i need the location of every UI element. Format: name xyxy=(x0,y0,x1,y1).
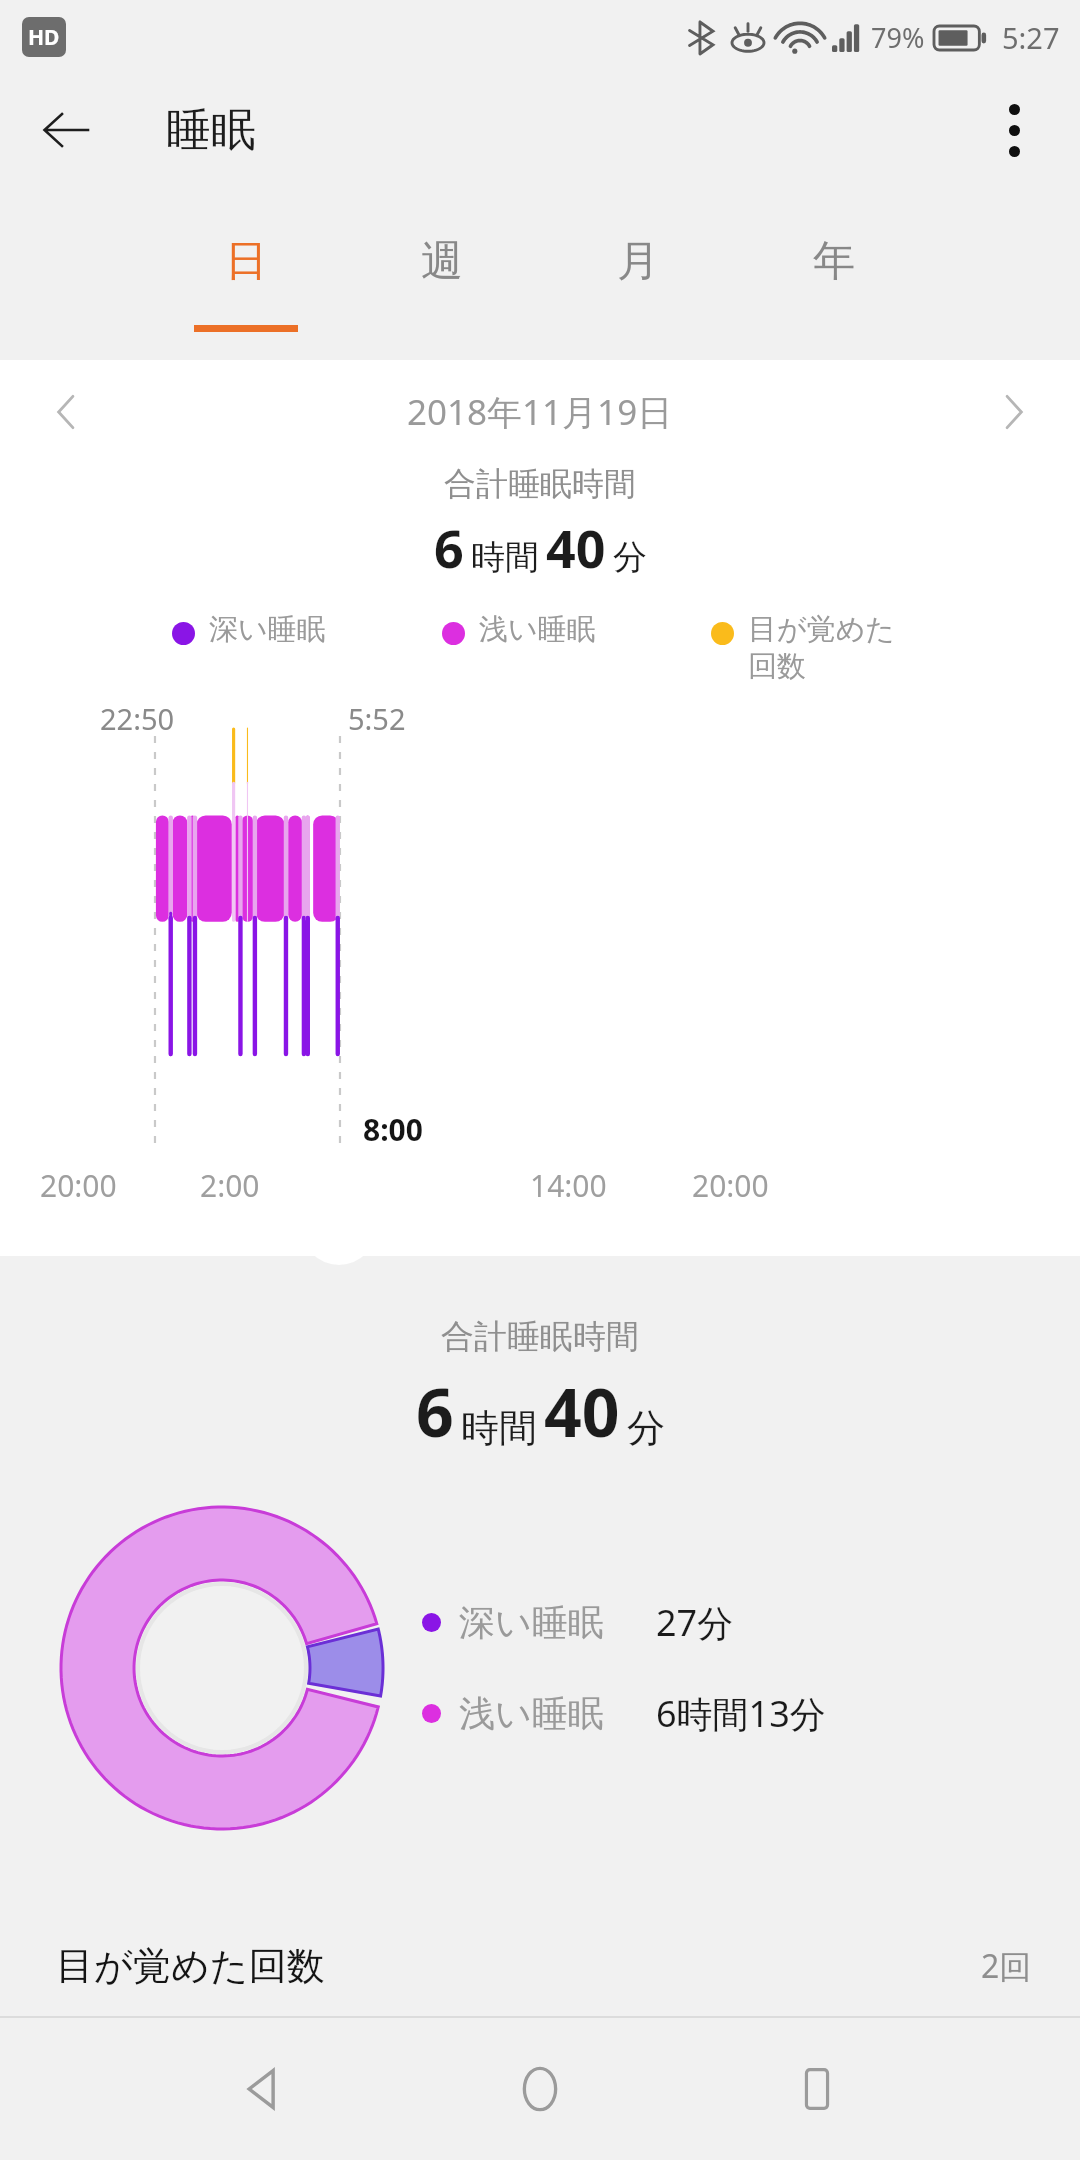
button[interactable]: More options xyxy=(974,90,1054,170)
staticText: 2018年11月19日 xyxy=(407,388,673,436)
staticText: 40 xyxy=(546,512,606,583)
staticText: 5:52 xyxy=(348,699,406,738)
staticText: 79% xyxy=(871,19,925,56)
staticText: HD xyxy=(28,23,60,52)
staticText: 8:00 xyxy=(363,1109,423,1150)
button[interactable]: 週 xyxy=(344,186,540,360)
staticText: 40 xyxy=(544,1366,620,1456)
button[interactable]: Back xyxy=(208,2034,318,2144)
staticText: 2回 xyxy=(981,1944,1032,1988)
staticText: 深い睡眠 xyxy=(209,611,326,648)
staticText: 22:50 xyxy=(100,699,175,738)
staticText: 回数 xyxy=(748,648,806,685)
staticText: 6 xyxy=(416,1366,454,1456)
staticText: 年 xyxy=(813,235,855,288)
staticText: 時間 xyxy=(471,536,539,579)
button[interactable]: Recent apps xyxy=(762,2034,872,2144)
staticText: 週 xyxy=(421,235,463,288)
button[interactable]: 目が覚めた回数 xyxy=(0,1916,1080,2016)
button[interactable]: Next day xyxy=(974,372,1054,452)
staticText: 20:00 xyxy=(40,1165,117,1206)
staticText: 時間 xyxy=(461,1404,537,1452)
staticText: 6時間13分 xyxy=(656,1689,826,1738)
button[interactable]: Previous day xyxy=(26,372,106,452)
button[interactable]: 日 xyxy=(148,186,344,360)
staticText: 睡眠 xyxy=(166,102,256,159)
staticText: 目が覚めた xyxy=(748,611,896,648)
button[interactable]: 年 xyxy=(736,186,932,360)
staticText: 分 xyxy=(613,536,647,579)
staticText: 浅い睡眠 xyxy=(459,1691,604,1736)
staticText: 20:00 xyxy=(692,1165,769,1206)
staticText: 合計睡眠時間 xyxy=(444,464,636,504)
staticText: 6 xyxy=(434,512,464,583)
staticText: 14:00 xyxy=(530,1165,607,1206)
staticText: 分 xyxy=(627,1404,665,1452)
staticText: 27分 xyxy=(656,1598,734,1647)
staticText: 浅い睡眠 xyxy=(479,611,596,648)
staticText: 深い睡眠 xyxy=(459,1600,604,1645)
button[interactable]: Scroll handle xyxy=(301,1189,377,1265)
button[interactable]: Back xyxy=(26,90,106,170)
staticText: 月 xyxy=(617,235,659,288)
button[interactable]: 月 xyxy=(540,186,736,360)
button[interactable]: Home xyxy=(485,2034,595,2144)
staticText: 5:27 xyxy=(1002,18,1060,57)
staticText: 日 xyxy=(225,235,267,288)
staticText: 合計睡眠時間 xyxy=(441,1316,639,1358)
staticText: 目が覚めた回数 xyxy=(56,1942,325,1990)
staticText: 2:00 xyxy=(200,1165,260,1206)
